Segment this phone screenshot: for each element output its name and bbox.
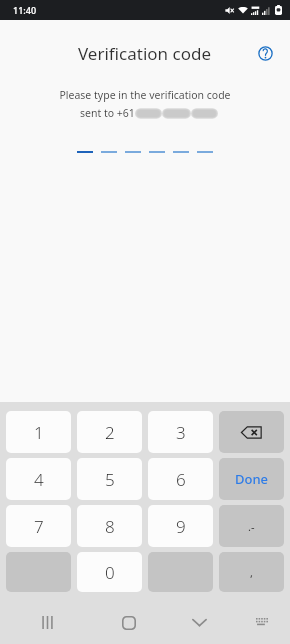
- button[interactable]: Digit 3: [125, 147, 141, 157]
- button[interactable]: Digit 1: [77, 147, 93, 157]
- button[interactable]: 7: [6, 505, 71, 547]
- button[interactable]: Home: [94, 601, 164, 644]
- staticText: sent to +61: [80, 106, 138, 120]
- button[interactable]: 4: [6, 458, 71, 500]
- button[interactable]: ,: [219, 552, 284, 592]
- button[interactable]: Help: [252, 40, 278, 66]
- staticText: 1: [34, 421, 44, 444]
- button[interactable]: 8: [77, 505, 142, 547]
- staticText: ,: [250, 565, 253, 580]
- staticText: 2: [105, 421, 115, 444]
- button[interactable]: 2: [77, 411, 142, 453]
- staticText: 8: [105, 515, 115, 538]
- staticText: .-: [248, 519, 255, 534]
- button[interactable]: Digit 6: [197, 147, 213, 157]
- staticText: 4: [34, 468, 44, 491]
- staticText: 11:40: [13, 4, 37, 16]
- button[interactable]: Digit 2: [101, 147, 117, 157]
- button[interactable]: Recents: [0, 601, 94, 644]
- button[interactable]: 3: [148, 411, 213, 453]
- button[interactable]: 6: [148, 458, 213, 500]
- button[interactable]: Hide keyboard: [164, 601, 234, 644]
- staticText: 0: [105, 561, 115, 584]
- button[interactable]: Backspace: [219, 411, 284, 453]
- staticText: Verification code: [78, 42, 212, 65]
- staticText: Done: [235, 470, 269, 488]
- button[interactable]: Digit 5: [173, 147, 189, 157]
- staticText: 5: [105, 468, 115, 491]
- button[interactable]: 5: [77, 458, 142, 500]
- button[interactable]: .-: [219, 505, 284, 547]
- staticText: 9: [176, 515, 186, 538]
- button[interactable]: 1: [6, 411, 71, 453]
- button[interactable]: Done: [219, 458, 284, 500]
- staticText: 3: [176, 421, 186, 444]
- button[interactable]: 0: [77, 552, 142, 592]
- button[interactable]: 9: [148, 505, 213, 547]
- button[interactable]: Change keyboard: [234, 601, 290, 644]
- staticText: Please type in the verification code: [0, 88, 290, 102]
- button[interactable]: Digit 4: [149, 147, 165, 157]
- staticText: 6: [176, 468, 186, 491]
- staticText: 7: [34, 515, 44, 538]
